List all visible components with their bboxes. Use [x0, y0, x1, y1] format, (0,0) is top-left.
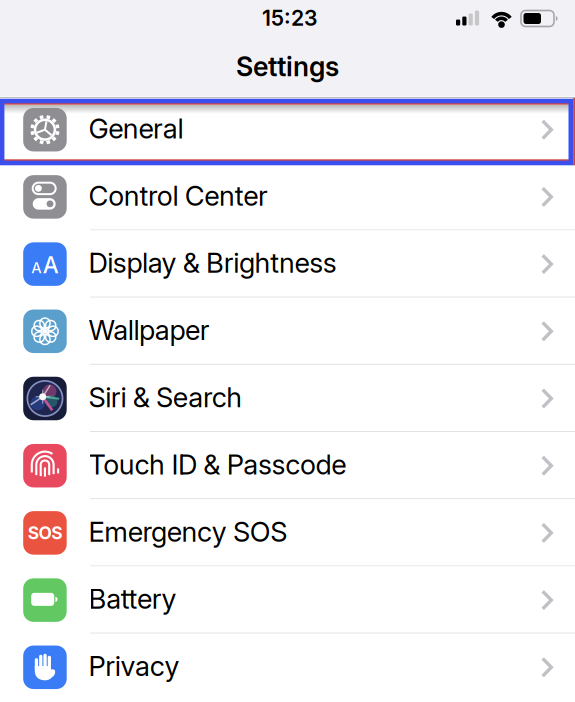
- button[interactable]: General: [0, 96, 575, 163]
- staticText: Privacy: [88, 650, 179, 683]
- button[interactable]: Battery: [0, 566, 575, 634]
- button[interactable]: Control Center: [0, 163, 575, 230]
- button[interactable]: Privacy: [0, 634, 575, 701]
- staticText: A: [43, 252, 59, 278]
- staticText: SOS: [28, 523, 62, 543]
- staticText: Emergency SOS: [88, 515, 287, 548]
- staticText: Control Center: [88, 179, 268, 212]
- staticText: 15:23: [262, 5, 318, 31]
- staticText: Battery: [88, 582, 176, 615]
- staticText: Wallpaper: [88, 314, 210, 347]
- staticText: Touch ID & Passcode: [88, 448, 346, 481]
- staticText: Siri & Search: [88, 381, 242, 414]
- button[interactable]: Siri & Search: [0, 365, 575, 432]
- staticText: General: [88, 112, 183, 145]
- staticText: A: [31, 259, 41, 277]
- button[interactable]: Touch ID & Passcode: [0, 432, 575, 499]
- button[interactable]: Wallpaper: [0, 298, 575, 365]
- staticText: Display & Brightness: [88, 246, 337, 279]
- button[interactable]: A: [0, 230, 575, 298]
- button[interactable]: SOS: [0, 499, 575, 566]
- staticText: Settings: [236, 51, 339, 82]
